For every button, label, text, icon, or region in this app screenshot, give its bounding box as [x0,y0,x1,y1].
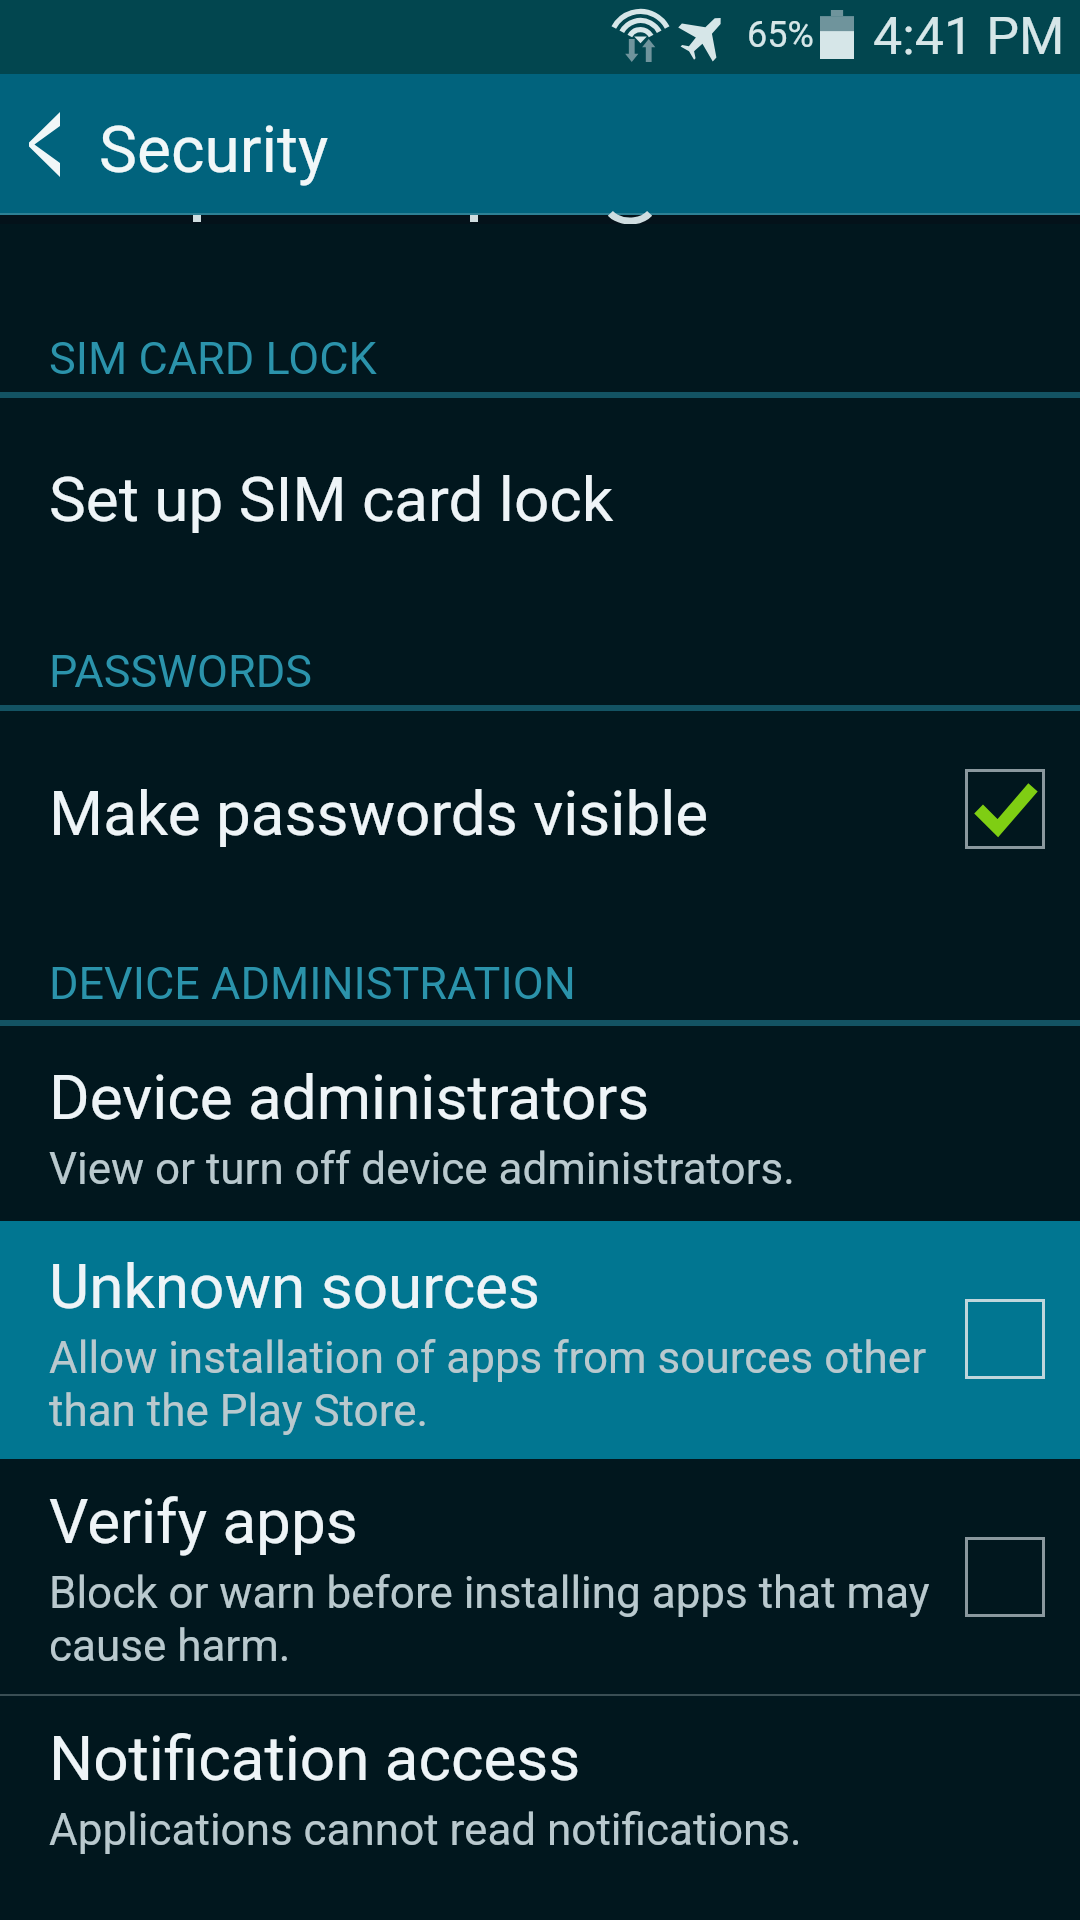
staticText: Device administrators [49,1061,650,1134]
button[interactable]: Notification access [0,1696,1080,1920]
staticText: Unknown sources [49,1250,540,1323]
button[interactable]: Device administrators [0,1026,1080,1221]
staticText: View or turn off device administrators. [49,1143,795,1195]
staticText: Verify apps [49,1485,358,1558]
other: Navigate up [0,75,88,213]
staticText: PASSWORDS [49,645,313,698]
button[interactable]: Unknown sources [0,1221,1080,1459]
staticText: Applications cannot read notifications. [49,1804,802,1856]
staticText: Block or warn before installing apps tha… [49,1567,930,1672]
button[interactable]: Verify apps [0,1459,1080,1694]
staticText: Allow installation of apps from sources … [49,1332,927,1437]
staticText: Make passwords visible [49,777,709,850]
staticText: Security [99,113,329,188]
staticText: 4:41 PM [873,6,1065,67]
staticText: Set up SIM card lock [49,463,614,536]
staticText: 65% [747,14,814,56]
button[interactable]: Set up SIM card lock [0,398,1080,583]
staticText: SIM CARD LOCK [49,332,377,385]
staticText: Notification access [49,1722,581,1795]
staticText: DEVICE ADMINISTRATION [49,957,576,1010]
button[interactable]: Navigate up [0,74,1080,213]
button[interactable]: Make passwords visible [0,711,1080,895]
